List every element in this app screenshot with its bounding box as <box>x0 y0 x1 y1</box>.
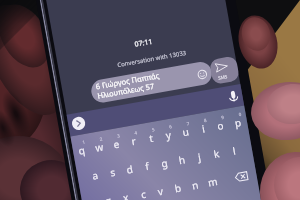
button[interactable]: Phone showing messaging app <box>0 0 300 200</box>
